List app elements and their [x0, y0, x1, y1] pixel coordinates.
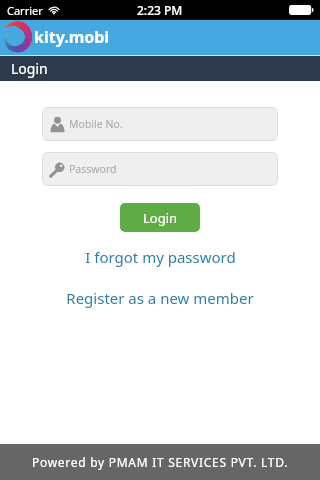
staticText: Carrier: [7, 3, 43, 18]
other: kity.mobi logo: [0, 21, 32, 54]
staticText: Powered by PMAM IT SERVICES PVT. LTD.: [32, 454, 289, 470]
staticText: Login: [11, 59, 48, 78]
staticText: Register as a new member: [66, 288, 254, 308]
button[interactable]: I forgot my password: [79, 245, 242, 269]
staticText: Login: [143, 209, 178, 227]
button[interactable]: Password: [42, 152, 278, 186]
staticText: 2:23 PM: [137, 2, 183, 18]
staticText: Mobile No.: [69, 117, 123, 131]
staticText: Password: [69, 162, 117, 176]
button[interactable]: Register as a new member: [60, 286, 260, 310]
button[interactable]: Mobile No.: [42, 107, 278, 141]
staticText: kity.mobi: [34, 26, 110, 48]
button[interactable]: Login: [120, 203, 200, 232]
other: Battery: [289, 5, 314, 15]
staticText: I forgot my password: [85, 247, 236, 267]
